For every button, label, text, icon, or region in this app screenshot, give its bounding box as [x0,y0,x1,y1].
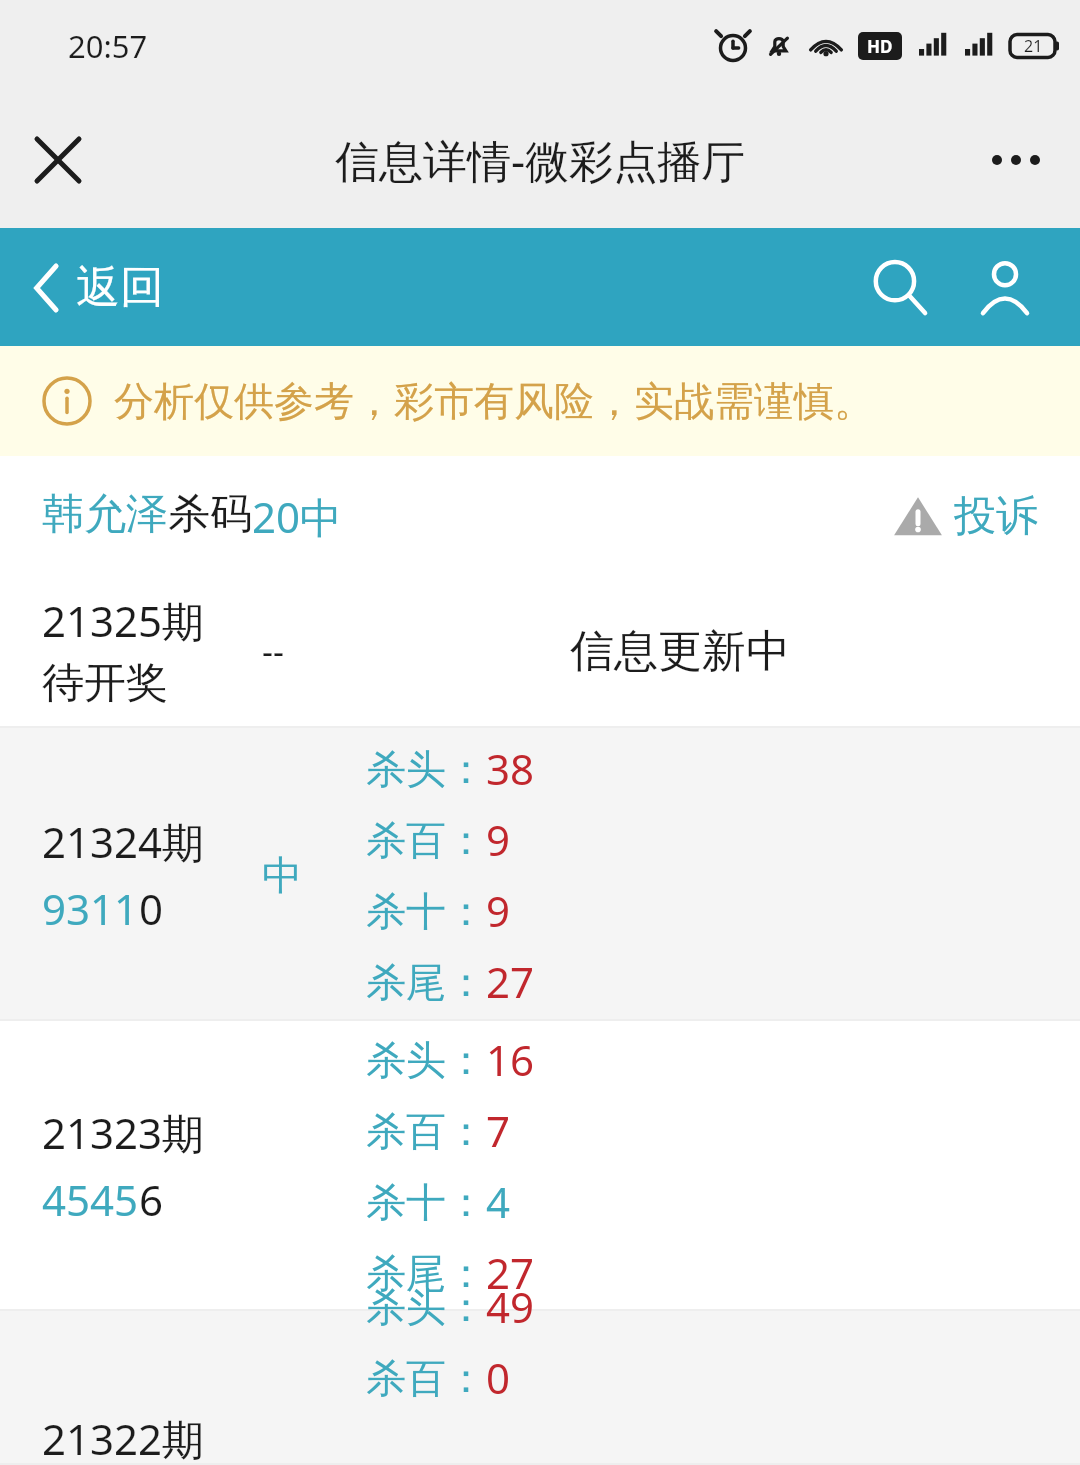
staticText: 杀头： [366,1282,486,1332]
staticText: 20中 [252,488,343,545]
staticText: 27 [486,953,535,1010]
staticText: 杀头： [366,1035,486,1085]
button[interactable]: More options [980,124,1052,196]
staticText: 杀十： [366,1177,486,1227]
button[interactable]: Search [864,252,934,322]
staticText: 杀尾： [366,1248,486,1298]
staticText: 杀十： [366,886,486,936]
staticText: 中 [262,850,302,900]
staticText: 信息更新中 [570,624,790,679]
staticText: 7 [486,1102,511,1159]
staticText: 杀百： [366,1353,486,1403]
button[interactable]: 21324期 [0,728,1080,1021]
staticText: 信息详情-微彩点播厅 [335,130,746,190]
staticText: 21324期 [42,813,205,870]
staticText: 杀百： [366,815,486,865]
button[interactable]: 投诉 [892,490,1038,543]
staticText: 待开奖 [42,657,168,710]
button[interactable]: 返回 [34,260,164,315]
staticText: 6 [139,1171,164,1228]
staticText: 49 [486,1278,535,1335]
staticText: 21322期 [42,1410,205,1465]
staticText: 20:57 [68,25,148,67]
staticText: 21325期 [42,592,205,649]
button[interactable]: Account [970,252,1040,322]
staticText: 0 [486,1349,511,1406]
staticText: -- [262,628,284,674]
staticText: 投诉 [954,490,1038,543]
staticText: 21 [1024,35,1043,57]
button[interactable]: 21323期 [0,1021,1080,1311]
staticText: 27 [486,1244,535,1301]
button[interactable]: 21322期 [0,1311,1080,1465]
staticText: 分析仅供参考，彩市有风险，实战需谨慎。 [114,376,874,426]
staticText: 21323期 [42,1104,205,1161]
staticText: 返回 [76,260,164,315]
staticText: 杀码 [168,488,252,541]
staticText: 9 [486,882,511,939]
staticText: 4 [486,1173,511,1230]
button[interactable]: 21325期 [0,576,1080,726]
staticText: 杀百： [366,1106,486,1156]
button[interactable]: Close [22,124,94,196]
staticText: 9311 [42,880,139,937]
staticText: 0 [139,880,164,937]
staticText: 9 [486,811,511,868]
staticText: 38 [486,740,535,797]
staticText: 韩允泽 [42,488,168,541]
staticText: 4545 [42,1171,139,1228]
staticText: 杀尾： [366,957,486,1007]
staticText: 杀头： [366,744,486,794]
staticText: 16 [486,1031,535,1088]
staticText: HD [867,35,893,58]
